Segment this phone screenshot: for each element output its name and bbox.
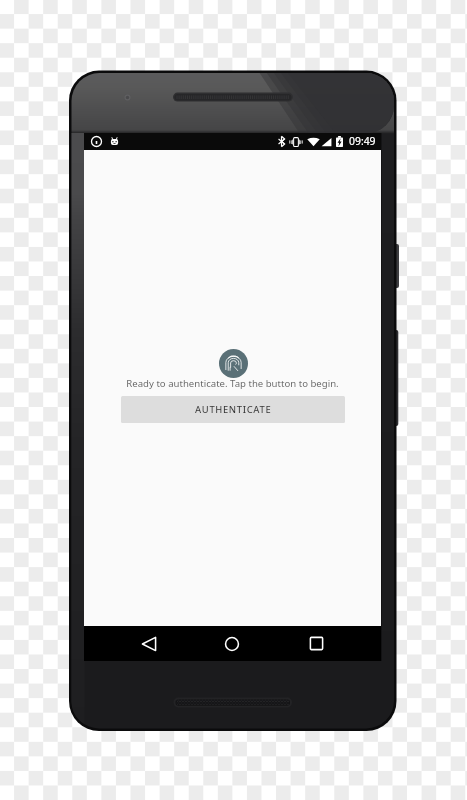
button[interactable]: Back bbox=[127, 626, 171, 661]
staticText: AUTHENTICATE bbox=[195, 403, 272, 416]
staticText: Ready to authenticate. Tap the button to… bbox=[126, 377, 339, 390]
button[interactable]: Recent apps bbox=[294, 626, 338, 661]
staticText: 09:49 bbox=[349, 134, 376, 148]
button[interactable]: Home bbox=[210, 626, 254, 661]
button[interactable]: AUTHENTICATE bbox=[121, 396, 345, 423]
